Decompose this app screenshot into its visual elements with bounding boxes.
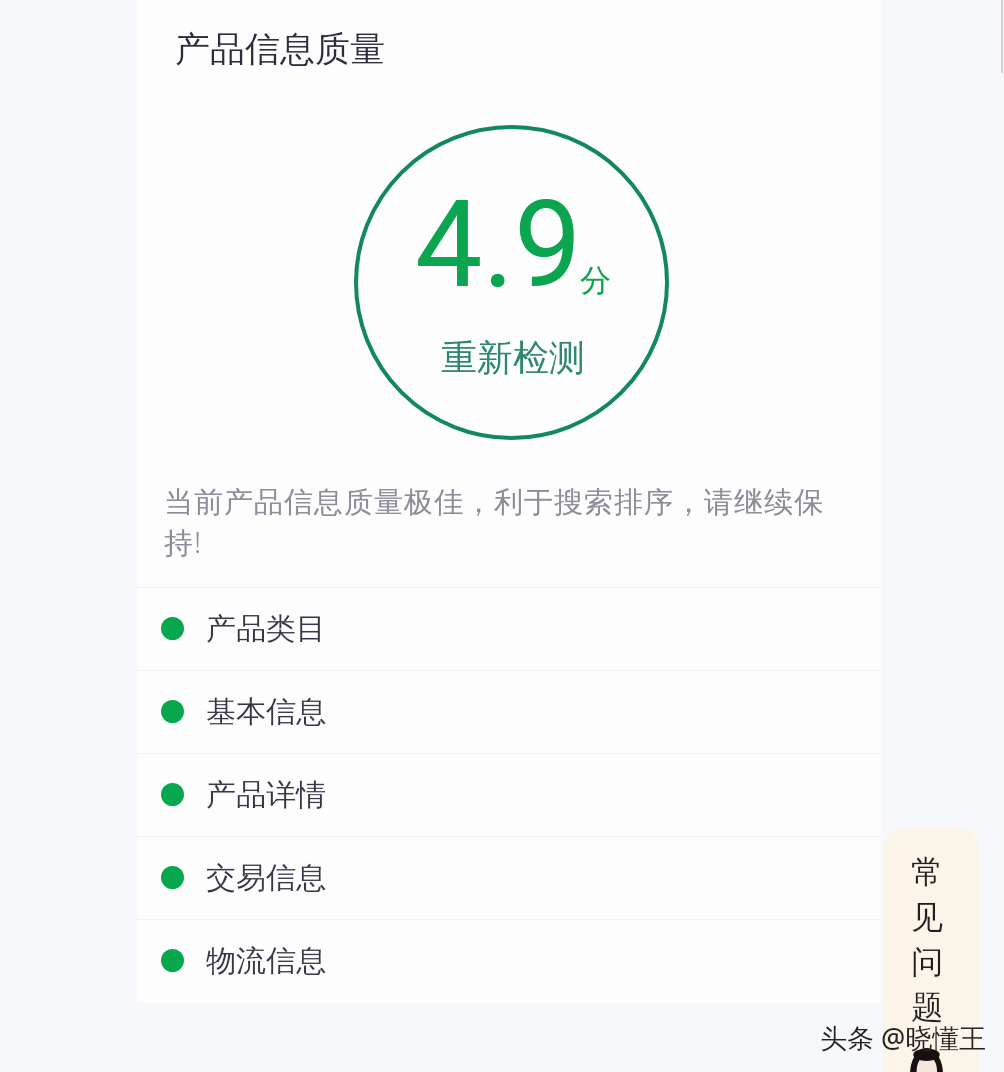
staticText: 产品信息质量 — [175, 27, 385, 71]
button[interactable]: 常见问题 — [883, 828, 979, 1072]
staticText: 分 — [580, 261, 611, 300]
staticText: 交易信息 — [206, 859, 326, 897]
staticText: 头条 @晓懂王 — [820, 1019, 987, 1056]
button[interactable]: 产品类目 — [137, 587, 881, 670]
staticText: 基本信息 — [206, 693, 326, 731]
button[interactable]: 基本信息 — [137, 670, 881, 753]
staticText: 产品类目 — [206, 610, 326, 648]
button[interactable]: 产品详情 — [137, 753, 881, 836]
staticText: 物流信息 — [206, 942, 326, 980]
staticText: 当前产品信息质量极佳，利于搜索排序，请继续保持! — [164, 484, 830, 562]
button[interactable]: 物流信息 — [137, 919, 881, 1002]
button[interactable]: 交易信息 — [137, 836, 881, 919]
staticText: 4.9 — [415, 175, 582, 316]
staticText: 产品详情 — [206, 776, 326, 814]
staticText: 常 见 问 题 — [883, 852, 975, 1027]
staticText: 重新检测 — [441, 335, 585, 380]
